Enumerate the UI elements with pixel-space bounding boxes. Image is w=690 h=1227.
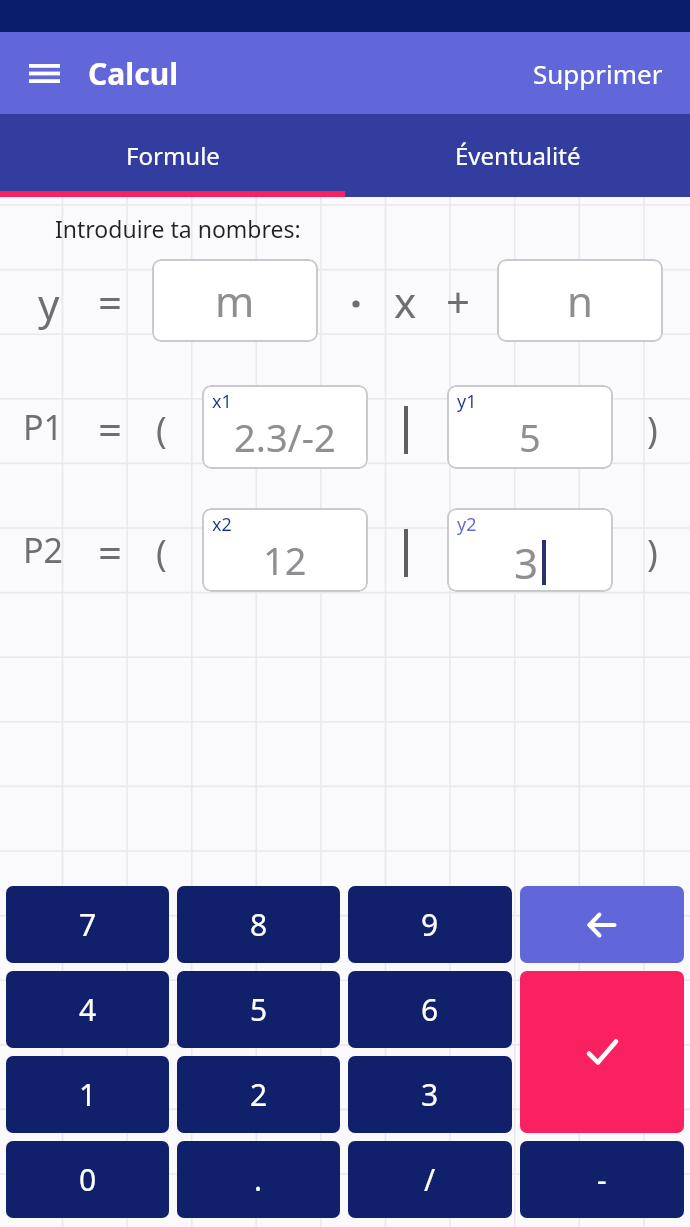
staticText: 3 <box>421 1074 439 1115</box>
staticText: 2.3/-2 <box>234 411 336 463</box>
staticText: n <box>567 272 593 329</box>
button[interactable]: 0 <box>6 1141 169 1218</box>
staticText: x2 <box>212 512 232 537</box>
staticText: Calcul <box>88 53 179 94</box>
staticText: = <box>98 273 123 330</box>
button[interactable]: y1 <box>447 385 613 469</box>
staticText: P2 <box>23 527 64 573</box>
button[interactable]: 8 <box>177 886 340 963</box>
staticText: Supprimer <box>533 56 663 91</box>
staticText: ) <box>647 405 658 454</box>
staticText: x1 <box>212 389 232 414</box>
staticText: Éventualité <box>455 139 581 172</box>
staticText: 0 <box>79 1159 97 1200</box>
button[interactable]: Formule <box>0 114 345 197</box>
staticText: . <box>254 1159 263 1200</box>
button[interactable]: x1 <box>202 385 368 469</box>
staticText: 2 <box>250 1074 268 1115</box>
button[interactable]: / <box>348 1141 512 1218</box>
staticText: 12 <box>263 534 307 586</box>
staticText: = <box>98 400 123 457</box>
staticText: 5 <box>519 411 541 463</box>
button[interactable]: 6 <box>348 971 512 1048</box>
staticText: P1 <box>23 404 64 450</box>
staticText: 7 <box>79 904 97 945</box>
staticText: 6 <box>421 989 439 1030</box>
button[interactable]: 1 <box>6 1056 169 1133</box>
staticText: y <box>38 275 60 332</box>
staticText: 1 <box>79 1074 97 1115</box>
staticText: m <box>215 272 255 329</box>
staticText: ( <box>156 405 167 454</box>
button[interactable]: y2 <box>447 508 613 592</box>
button[interactable]: - <box>520 1141 684 1218</box>
button[interactable]: Éventualité <box>345 114 690 197</box>
button[interactable] <box>0 32 88 114</box>
staticText: / <box>424 1159 436 1200</box>
staticText: 3 <box>514 534 539 591</box>
button[interactable]: 7 <box>6 886 169 963</box>
button[interactable]: . <box>177 1141 340 1218</box>
button[interactable] <box>520 971 684 1133</box>
staticText: + <box>446 273 471 330</box>
staticText: 5 <box>250 989 268 1030</box>
staticText: - <box>597 1159 607 1200</box>
staticText: x <box>394 273 417 330</box>
staticText: Introduire ta nombres: <box>55 213 301 244</box>
staticText: = <box>98 523 123 580</box>
staticText: ) <box>647 528 658 577</box>
button[interactable] <box>520 886 684 963</box>
button[interactable]: x2 <box>202 508 368 592</box>
button[interactable]: 4 <box>6 971 169 1048</box>
button[interactable]: n <box>497 259 663 342</box>
button[interactable]: 3 <box>348 1056 512 1133</box>
button[interactable]: Supprimer <box>533 56 690 91</box>
button[interactable]: 5 <box>177 971 340 1048</box>
staticText: 9 <box>421 904 439 945</box>
button[interactable]: m <box>152 259 318 342</box>
button[interactable]: 9 <box>348 886 512 963</box>
staticText: ( <box>156 528 167 577</box>
staticText: 8 <box>250 904 268 945</box>
staticText: y1 <box>457 389 477 414</box>
staticText: Formule <box>126 139 220 172</box>
staticText: y2 <box>457 512 477 537</box>
staticText: 4 <box>79 989 97 1030</box>
button[interactable]: 2 <box>177 1056 340 1133</box>
